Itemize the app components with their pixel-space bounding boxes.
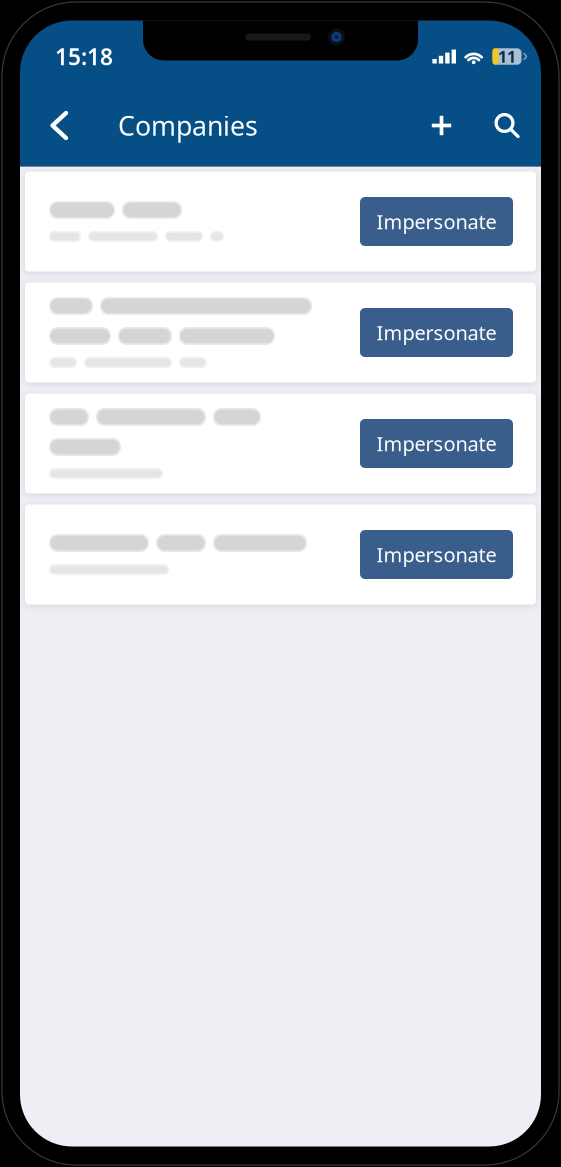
staticText: Companies: [118, 108, 258, 143]
button[interactable]: Search: [478, 95, 536, 155]
staticText: Impersonate: [376, 541, 496, 568]
button[interactable]: Impersonate: [360, 530, 513, 579]
staticText: 11: [498, 46, 516, 67]
button[interactable]: Impersonate: [360, 419, 513, 468]
button[interactable]: Impersonate: [360, 197, 513, 246]
staticText: Impersonate: [376, 430, 496, 457]
staticText: 15:18: [55, 41, 113, 71]
button[interactable]: Back: [36, 98, 82, 152]
button[interactable]: Add: [414, 95, 478, 155]
button[interactable]: Impersonate: [360, 308, 513, 357]
staticText: Impersonate: [376, 208, 496, 235]
staticText: Impersonate: [376, 319, 496, 346]
